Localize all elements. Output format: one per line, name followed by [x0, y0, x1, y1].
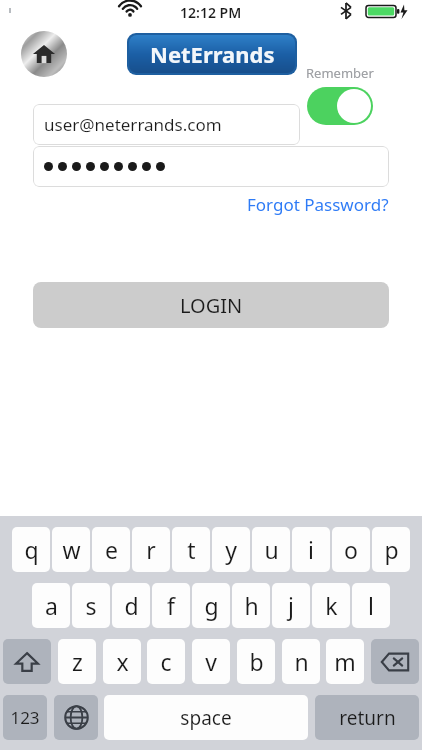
staticText: k — [325, 590, 338, 621]
button[interactable] — [33, 146, 389, 187]
button[interactable]: user@neterrands.com — [33, 104, 300, 145]
button[interactable]: n — [282, 639, 320, 684]
staticText: h — [244, 590, 259, 621]
staticText: p — [384, 534, 399, 565]
staticText: d — [124, 590, 139, 621]
staticText: i — [308, 534, 314, 565]
button[interactable]: t — [172, 527, 210, 572]
staticText: u — [264, 534, 279, 565]
button[interactable]: i — [292, 527, 330, 572]
button[interactable]: j — [272, 583, 310, 628]
staticText: 123 — [10, 706, 40, 729]
staticText: y — [225, 534, 237, 565]
staticText: b — [249, 646, 264, 677]
staticText: user@neterrands.com — [44, 113, 222, 136]
button[interactable]: return — [315, 695, 419, 740]
staticText: f — [167, 590, 175, 621]
button[interactable]: q — [12, 527, 50, 572]
staticText: a — [45, 590, 58, 621]
button[interactable]: u — [252, 527, 290, 572]
staticText: t — [187, 534, 196, 565]
button[interactable]: e — [92, 527, 130, 572]
staticText: j — [288, 590, 294, 621]
staticText: s — [85, 590, 97, 621]
button[interactable]: o — [332, 527, 370, 572]
button[interactable]: 123 — [3, 695, 47, 740]
button[interactable]: b — [237, 639, 275, 684]
button[interactable]: Shift — [3, 639, 51, 684]
staticText: LOGIN — [180, 292, 243, 319]
button[interactable]: Backspace — [371, 639, 419, 684]
staticText: z — [72, 646, 83, 677]
button[interactable]: y — [212, 527, 250, 572]
button[interactable]: r — [132, 527, 170, 572]
button[interactable]: l — [352, 583, 390, 628]
staticText: return — [339, 705, 396, 731]
button[interactable]: d — [112, 583, 150, 628]
button[interactable]: v — [192, 639, 230, 684]
button[interactable]: c — [147, 639, 185, 684]
staticText: m — [334, 646, 356, 677]
staticText: r — [146, 534, 156, 565]
staticText: v — [205, 646, 217, 677]
button[interactable]: w — [52, 527, 90, 572]
button[interactable]: Home — [21, 31, 67, 77]
button[interactable]: k — [312, 583, 350, 628]
button[interactable]: a — [32, 583, 70, 628]
button[interactable]: p — [372, 527, 410, 572]
staticText: o — [344, 534, 358, 565]
staticText: space — [180, 705, 232, 731]
button[interactable]: NetErrands — [129, 35, 295, 73]
staticText: q — [24, 534, 39, 565]
button[interactable]: LOGIN — [33, 282, 389, 328]
staticText: x — [116, 646, 129, 677]
button[interactable]: m — [326, 639, 364, 684]
button[interactable]: Forgot Password? — [247, 193, 389, 216]
staticText: n — [294, 646, 309, 677]
button[interactable]: x — [103, 639, 141, 684]
button[interactable]: space — [104, 695, 308, 740]
staticText: NetErrands — [150, 39, 275, 69]
staticText: Remember — [306, 64, 374, 82]
staticText: g — [204, 590, 219, 621]
staticText: c — [160, 646, 172, 677]
button[interactable]: Switch keyboard — [54, 695, 98, 740]
staticText: 12:12 PM — [180, 3, 242, 22]
button[interactable]: z — [58, 639, 96, 684]
button[interactable]: s — [72, 583, 110, 628]
button[interactable]: h — [232, 583, 270, 628]
staticText: l — [368, 590, 374, 621]
button[interactable]: Remember me — [307, 87, 373, 125]
button[interactable]: g — [192, 583, 230, 628]
staticText: e — [105, 534, 118, 565]
staticText: w — [62, 534, 81, 565]
button[interactable]: f — [152, 583, 190, 628]
